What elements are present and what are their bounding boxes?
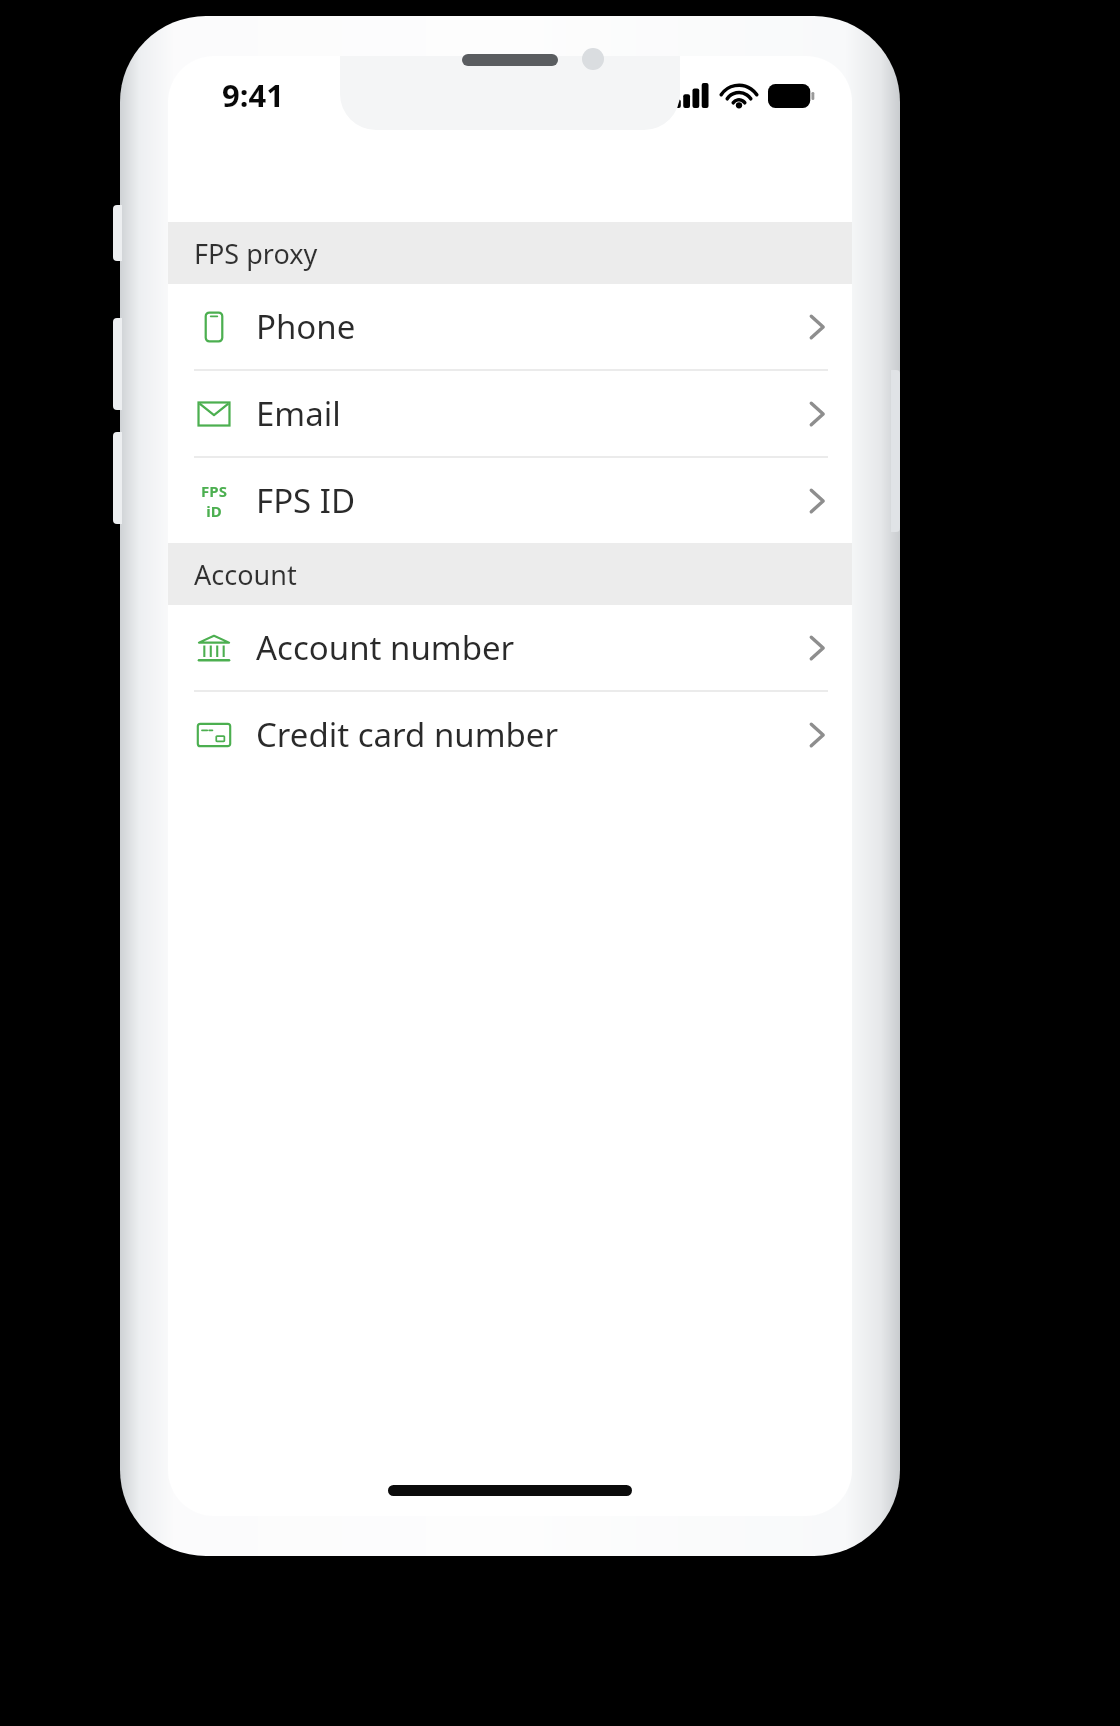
staticText: Account — [194, 556, 297, 593]
staticText: Email — [256, 391, 806, 436]
staticText: FPS proxy — [194, 235, 318, 272]
staticText: FPS — [201, 481, 227, 501]
staticText: iD — [206, 501, 222, 521]
button[interactable]: Phone — [168, 284, 852, 369]
button[interactable]: Email — [168, 371, 852, 456]
button[interactable]: FPS — [168, 458, 852, 543]
staticText: Account number — [256, 625, 806, 670]
staticText: Phone — [256, 304, 806, 349]
button[interactable]: Credit card number — [168, 692, 852, 777]
button[interactable]: Account number — [168, 605, 852, 690]
staticText: 9:41 — [222, 74, 284, 116]
staticText: FPS ID — [256, 478, 806, 523]
staticText: Credit card number — [256, 712, 806, 757]
